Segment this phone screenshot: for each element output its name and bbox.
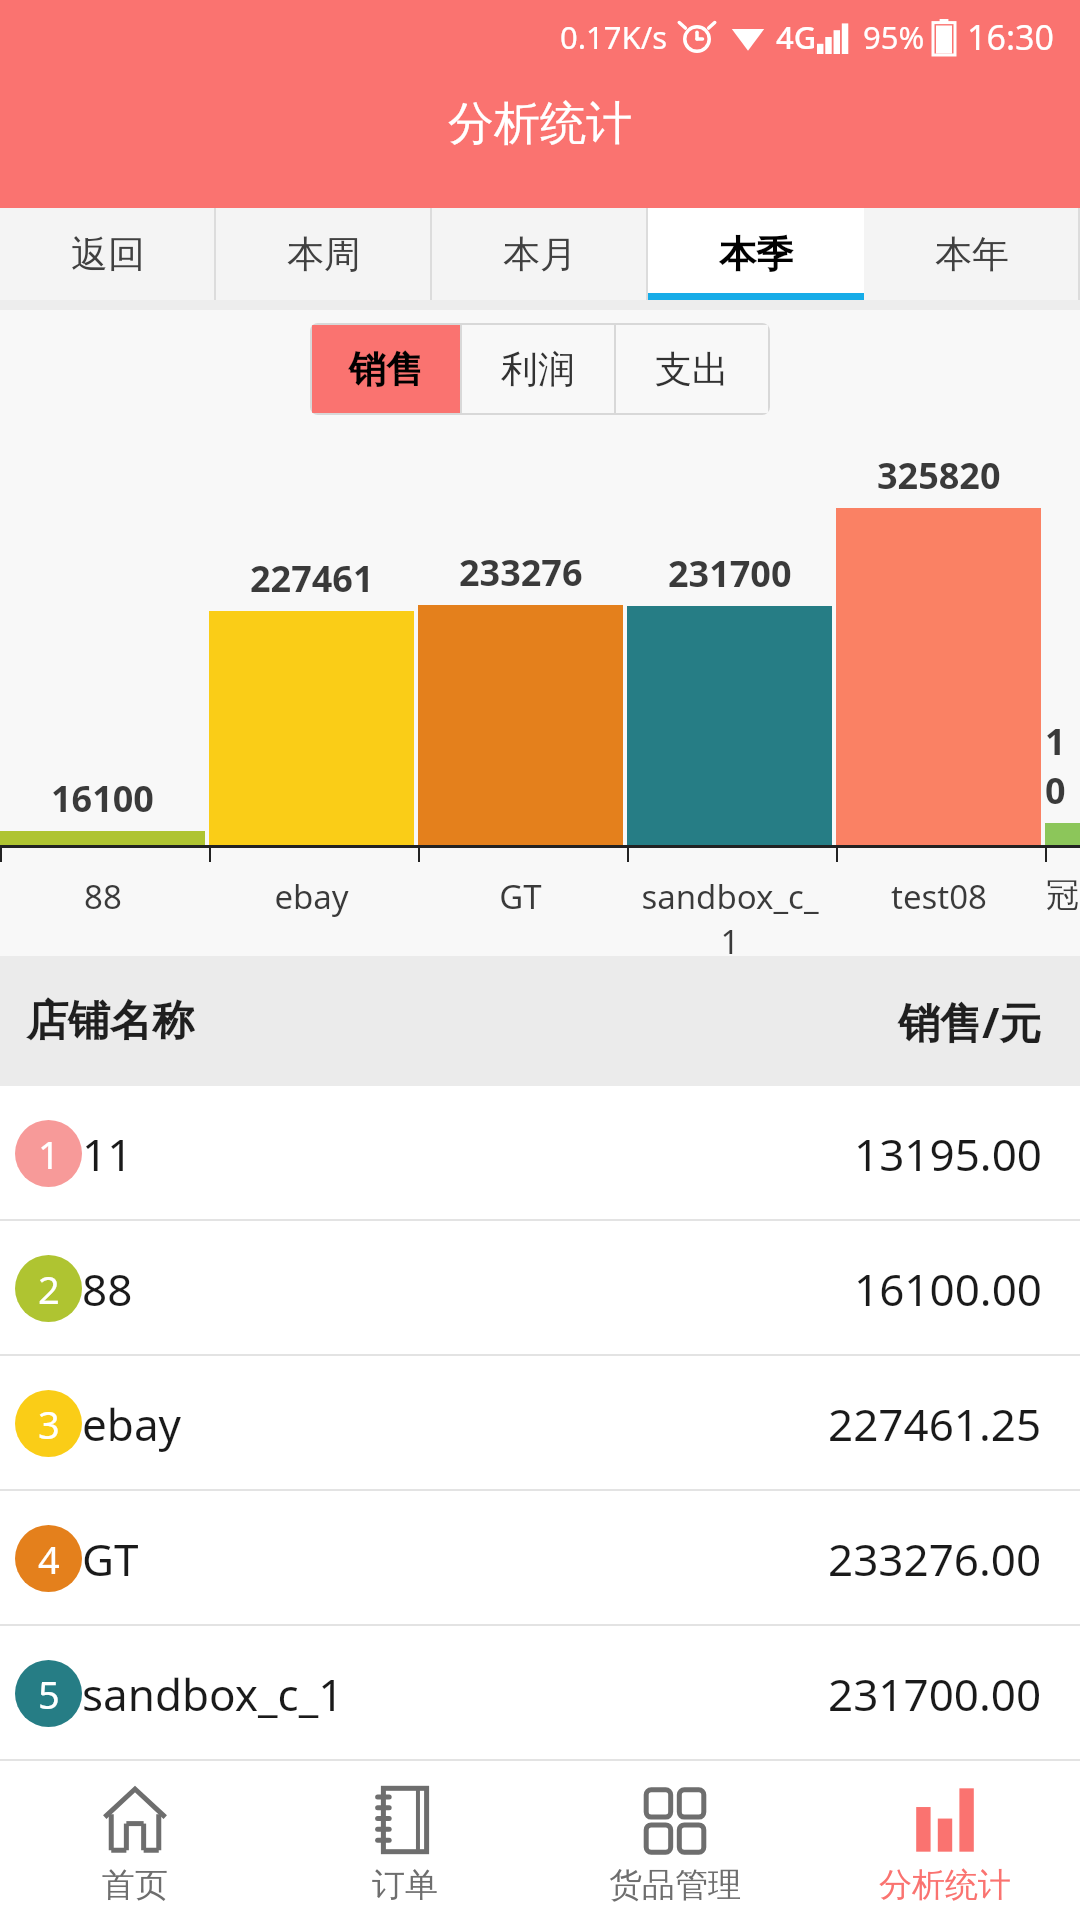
staticText: 11 xyxy=(82,1124,133,1184)
button[interactable]: 货品管理 xyxy=(540,1768,810,1920)
button[interactable]: 本月 xyxy=(432,208,648,300)
staticText: 本季 xyxy=(719,231,793,278)
staticText: 本周 xyxy=(287,231,361,278)
staticText: 1 xyxy=(38,1128,60,1180)
staticText: sandbox_c_ 1 xyxy=(641,874,819,956)
staticText: 分析统计 xyxy=(879,1864,1011,1906)
staticText: 231700 xyxy=(668,549,792,598)
button[interactable]: 支出 xyxy=(616,325,768,413)
staticText: 冠 xyxy=(1046,874,1079,916)
staticText: 0.17K/s xyxy=(560,16,668,58)
staticText: 13195.00 xyxy=(854,1124,1042,1184)
staticText: 销售 xyxy=(349,346,423,393)
staticText: 233276 xyxy=(459,548,583,597)
staticText: 10 xyxy=(1045,717,1080,815)
staticText: 本年 xyxy=(935,231,1009,278)
staticText: GT xyxy=(82,1529,139,1589)
button[interactable]: 5 xyxy=(0,1626,1080,1761)
staticText: 2 xyxy=(38,1263,60,1315)
staticText: 95% xyxy=(863,16,925,58)
staticText: ebay xyxy=(82,1394,181,1454)
button[interactable]: 首页 xyxy=(0,1768,270,1920)
button[interactable]: 返回 xyxy=(0,208,216,300)
staticText: 返回 xyxy=(71,231,145,278)
staticText: 利润 xyxy=(501,346,575,393)
staticText: 订单 xyxy=(372,1864,438,1906)
staticText: 231700.00 xyxy=(828,1664,1042,1724)
staticText: 本月 xyxy=(503,231,577,278)
staticText: 5 xyxy=(38,1668,60,1720)
staticText: 88 xyxy=(84,874,122,919)
staticText: ebay xyxy=(274,874,349,919)
button[interactable]: 2 xyxy=(0,1221,1080,1356)
staticText: 16100.00 xyxy=(854,1259,1042,1319)
button[interactable]: 订单 xyxy=(270,1768,540,1920)
staticText: 227461 xyxy=(250,554,374,603)
button[interactable]: 销售 xyxy=(312,325,460,413)
button[interactable]: 1 xyxy=(0,1086,1080,1221)
staticText: 16:30 xyxy=(967,14,1054,60)
staticText: 支出 xyxy=(655,346,729,393)
button[interactable]: 3 xyxy=(0,1356,1080,1491)
staticText: 4G xyxy=(776,16,817,58)
staticText: 首页 xyxy=(102,1864,168,1906)
staticText: 销售/元 xyxy=(898,993,1042,1050)
button[interactable]: 分析统计 xyxy=(810,1768,1080,1920)
staticText: 233276.00 xyxy=(828,1529,1042,1589)
button[interactable]: 4 xyxy=(0,1491,1080,1626)
button[interactable]: 本周 xyxy=(216,208,432,300)
button[interactable]: 利润 xyxy=(462,325,614,413)
staticText: 3 xyxy=(38,1398,60,1450)
button[interactable]: 本年 xyxy=(864,208,1080,300)
button[interactable]: 本季 xyxy=(648,208,864,300)
staticText: sandbox_c_1 xyxy=(82,1664,344,1724)
staticText: 88 xyxy=(82,1259,133,1319)
staticText: 4 xyxy=(38,1533,60,1585)
staticText: 分析统计 xyxy=(448,95,632,153)
staticText: 16100 xyxy=(51,774,154,823)
staticText: 227461.25 xyxy=(828,1394,1042,1454)
staticText: GT xyxy=(499,874,542,919)
staticText: test08 xyxy=(891,874,987,919)
staticText: 货品管理 xyxy=(609,1864,741,1906)
staticText: 店铺名称 xyxy=(26,995,194,1048)
staticText: 325820 xyxy=(877,451,1001,500)
